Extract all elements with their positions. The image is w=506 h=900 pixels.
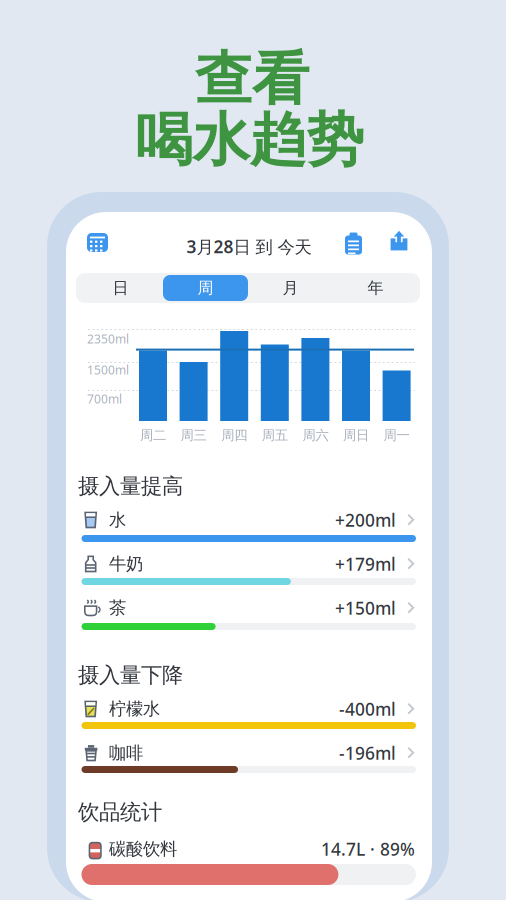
staticText: 2350ml — [87, 331, 129, 347]
staticText: 周日 — [343, 427, 369, 443]
staticText: 月 — [282, 278, 298, 298]
staticText: 牛奶 — [109, 553, 143, 575]
staticText: 喝水趋势 — [135, 105, 363, 175]
staticText: 摄入量下降 — [78, 662, 183, 688]
staticText: 周五 — [262, 427, 288, 443]
staticText: 水 — [109, 509, 126, 531]
button[interactable]: 碳酸饮料 — [66, 838, 432, 860]
staticText: 茶 — [109, 597, 126, 619]
button[interactable]: 咖啡 — [66, 742, 432, 764]
staticText: 周 — [197, 278, 213, 298]
staticText: +200ml — [335, 508, 396, 531]
staticText: +150ml — [335, 596, 396, 619]
button[interactable]: 月 — [248, 275, 333, 301]
staticText: 周四 — [221, 427, 247, 443]
staticText: +179ml — [335, 552, 396, 575]
staticText: 周二 — [140, 427, 166, 443]
staticText: 周一 — [384, 427, 410, 443]
staticText: 咖啡 — [109, 742, 143, 764]
button[interactable]: 茶 — [66, 597, 432, 619]
staticText: -400ml — [339, 697, 396, 720]
button[interactable]: Calendar — [87, 233, 108, 252]
staticText: 查看 — [195, 44, 309, 114]
staticText: 3月28日 到 今天 — [186, 235, 311, 258]
button[interactable]: 柠檬水 — [66, 698, 432, 720]
staticText: 700ml — [87, 391, 122, 407]
button[interactable]: 年 — [333, 275, 418, 301]
staticText: 周六 — [302, 427, 328, 443]
button[interactable]: 牛奶 — [66, 553, 432, 575]
staticText: 日 — [112, 278, 128, 298]
staticText: 年 — [367, 278, 383, 298]
button[interactable]: 日 — [78, 275, 163, 301]
staticText: 柠檬水 — [109, 698, 160, 720]
staticText: 饮品统计 — [78, 799, 162, 825]
button[interactable]: Log — [345, 231, 362, 253]
staticText: 14.7L · 89% — [321, 837, 415, 860]
button[interactable]: 水 — [66, 509, 432, 531]
button[interactable]: 周 — [163, 275, 248, 301]
button[interactable]: Share — [390, 230, 408, 252]
staticText: 周三 — [181, 427, 207, 443]
staticText: 1500ml — [87, 362, 129, 378]
staticText: 碳酸饮料 — [109, 838, 177, 860]
staticText: 摄入量提高 — [78, 473, 183, 499]
staticText: -196ml — [339, 741, 396, 764]
